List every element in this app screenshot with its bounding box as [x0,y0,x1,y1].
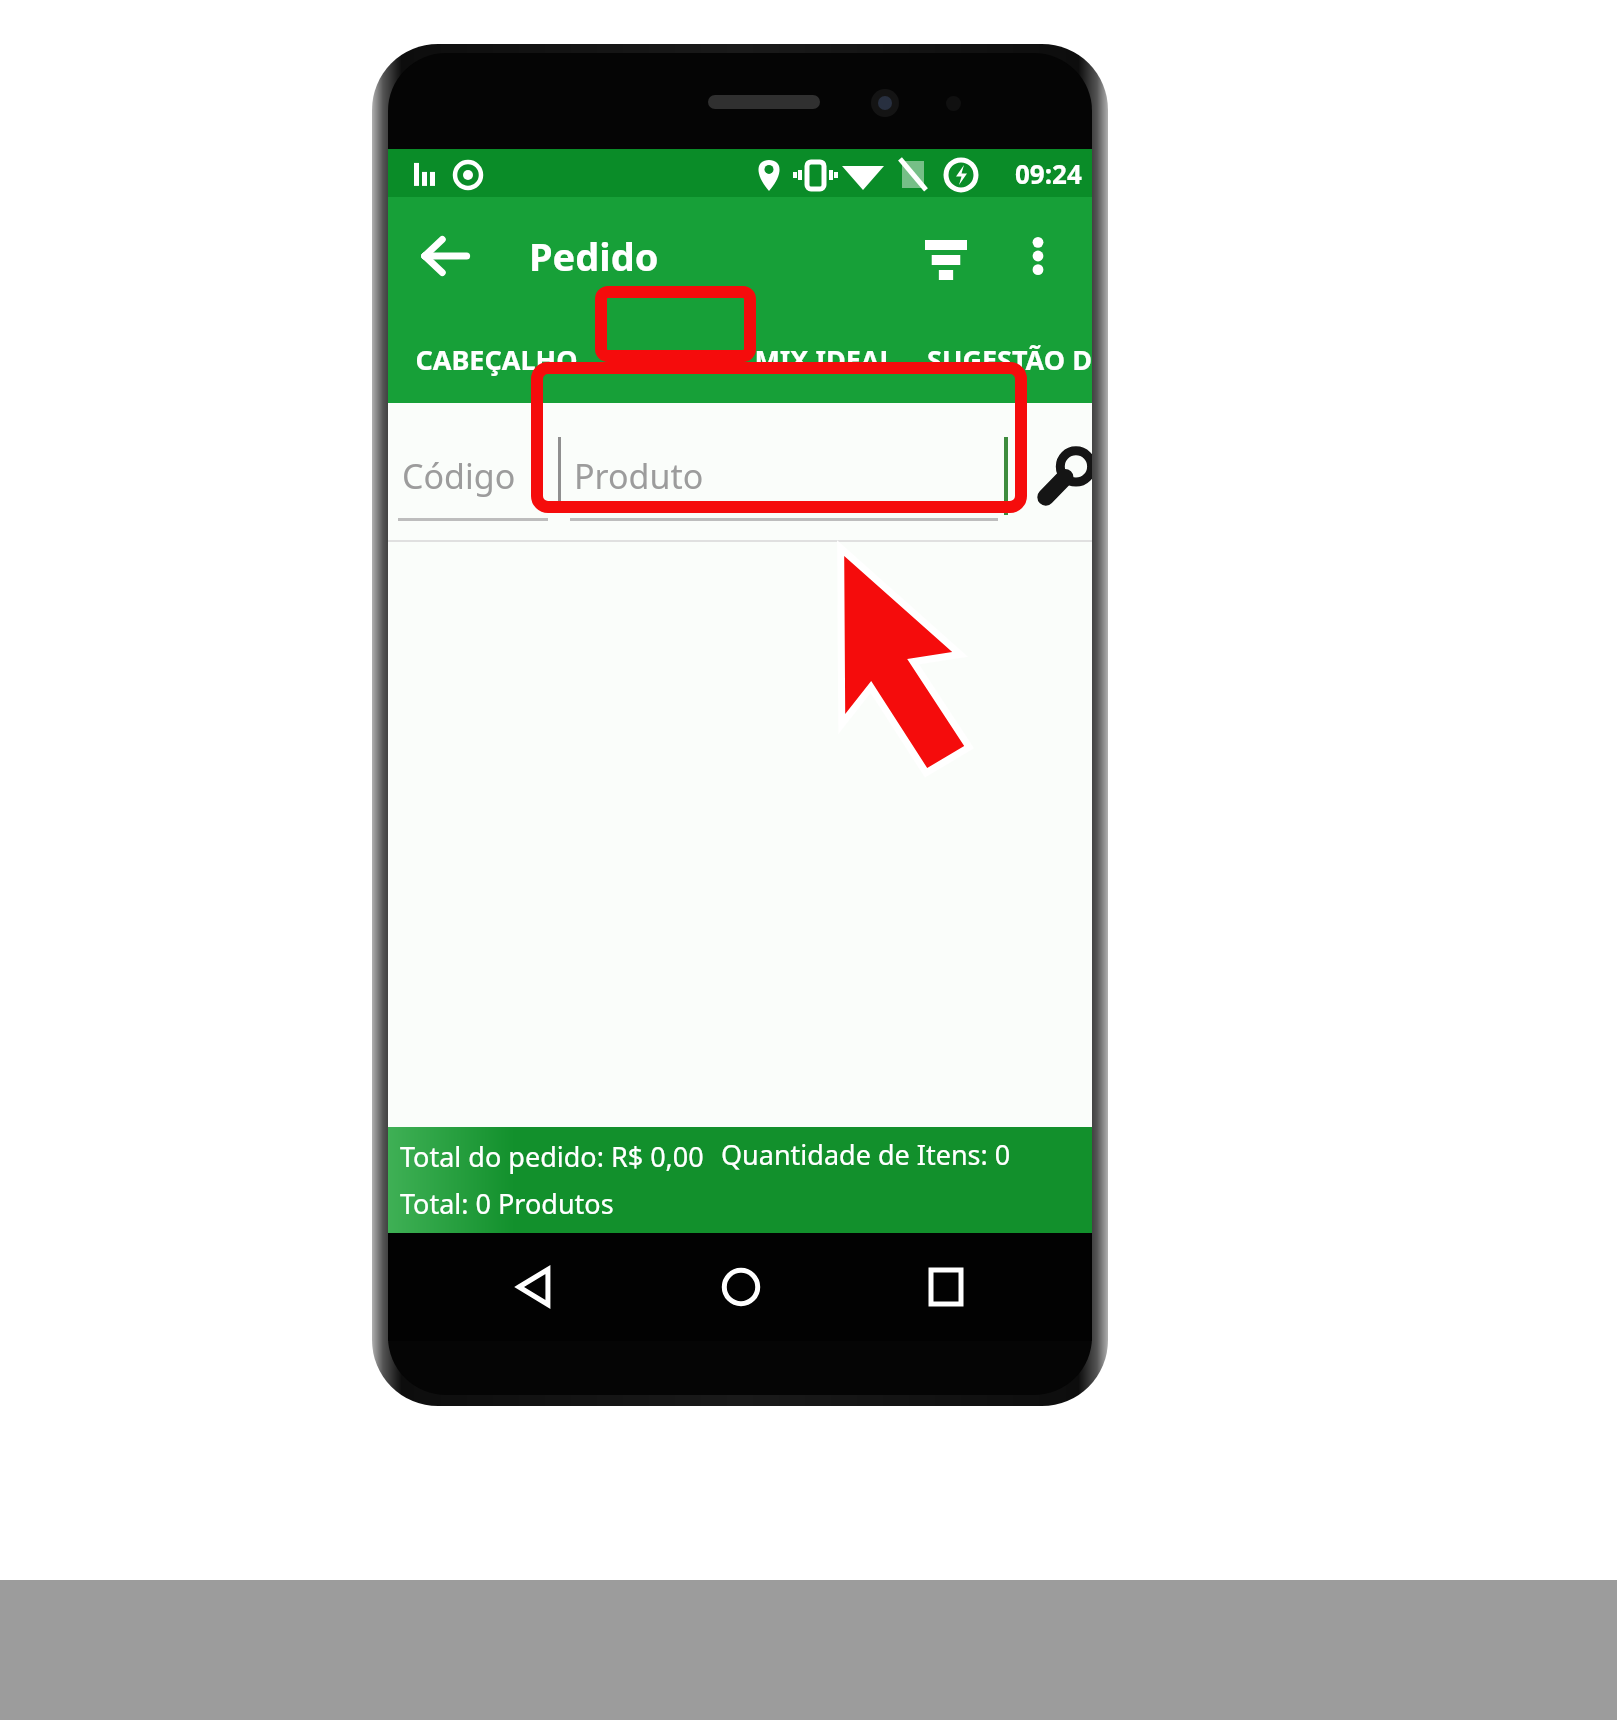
staticText: TABELA [614,341,714,378]
staticText: Produto [574,453,704,499]
staticText: Código [402,453,516,499]
staticText: Total do pedido: R$ 0,00 [400,1138,704,1175]
button[interactable]: Filter [908,218,984,294]
staticText: CABEÇALHO [415,341,578,378]
button[interactable]: Recent apps [843,1233,1048,1341]
staticText: Total: 0 Produtos [400,1185,614,1222]
button[interactable]: MIX IDEAL [748,315,900,403]
button[interactable]: Back [406,217,484,295]
button[interactable]: SUGESTÃO D [916,315,1092,403]
staticText: MIX IDEAL [754,341,895,378]
button[interactable]: More options [1000,218,1076,294]
button[interactable]: CABEÇALHO [408,315,584,403]
button[interactable]: Produto [570,439,998,521]
staticText: Pedido [529,230,659,282]
button[interactable]: Home [638,1233,843,1341]
button[interactable]: Back [432,1233,638,1341]
staticText: Quantidade de Itens: 0 [721,1136,1011,1173]
staticText: SUGESTÃO D [927,341,1092,378]
button[interactable]: TABELA [600,315,728,403]
staticText: 09:24 [1015,156,1082,191]
button[interactable]: Código [398,439,548,521]
button[interactable]: Search [1026,431,1092,517]
